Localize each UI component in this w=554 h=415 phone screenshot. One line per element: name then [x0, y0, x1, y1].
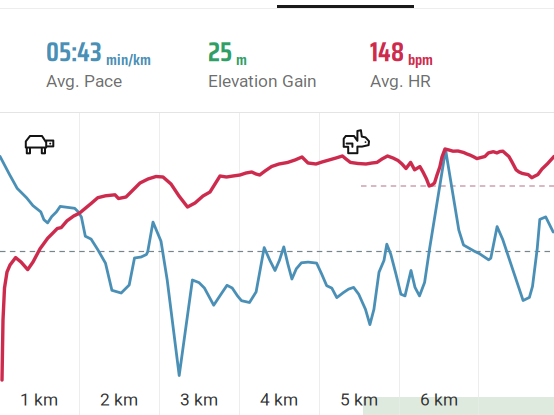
button[interactable]: 25: [208, 31, 370, 93]
staticText: 5 km: [340, 389, 378, 410]
staticText: bpm: [408, 47, 433, 72]
button[interactable]: 05:43: [46, 31, 208, 93]
staticText: 05:43: [46, 31, 102, 73]
staticText: 6 km: [420, 389, 458, 410]
staticText: Elevation Gain: [208, 71, 317, 91]
staticText: min/km: [106, 47, 151, 72]
staticText: 2 km: [100, 389, 138, 410]
staticText: 148: [370, 31, 404, 73]
button[interactable]: 148: [370, 31, 532, 93]
staticText: 3 km: [180, 389, 218, 410]
staticText: m: [236, 47, 247, 72]
staticText: 4 km: [260, 389, 298, 410]
staticText: 1 km: [20, 389, 58, 410]
staticText: 25: [208, 31, 232, 73]
staticText: Avg. HR: [370, 71, 431, 91]
staticText: Avg. Pace: [46, 71, 122, 91]
